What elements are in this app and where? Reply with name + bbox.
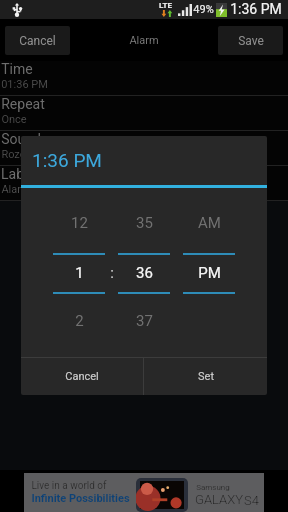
staticText: Live in a world of: [31, 480, 107, 492]
button[interactable]: Time: [0, 61, 288, 96]
staticText: 1:36 PM: [230, 1, 282, 17]
staticText: 35: [136, 214, 153, 232]
staticText: 1: [75, 264, 84, 282]
button[interactable]: Cancel: [21, 358, 143, 395]
staticText: 12: [71, 214, 88, 232]
staticText: AM: [198, 214, 221, 232]
button[interactable]: Set: [144, 358, 267, 395]
staticText: 2: [75, 312, 84, 330]
staticText: LTE: [159, 1, 172, 10]
staticText: Alarm: [129, 34, 159, 47]
staticText: Label: [1, 166, 35, 182]
staticText: 37: [136, 312, 153, 330]
button[interactable]: 12: [53, 214, 105, 334]
button[interactable]: Cancel: [5, 26, 70, 55]
staticText: 49%: [193, 3, 214, 16]
button[interactable]: AM: [183, 214, 235, 334]
staticText: Once: [1, 113, 27, 126]
staticText: Rozgar: [1, 148, 36, 161]
staticText: Infinite Possibilities: [31, 492, 130, 505]
other: USB connected: [12, 3, 22, 17]
staticText: Samsung: [196, 483, 230, 492]
button[interactable]: 35: [118, 214, 170, 334]
button[interactable]: Live in a world of: [24, 473, 264, 512]
button[interactable]: Save: [218, 26, 283, 55]
staticText: GALAXY: [195, 492, 243, 507]
button[interactable]: Repeat: [0, 96, 288, 131]
staticText: Sound: [1, 131, 41, 147]
staticText: Save: [238, 34, 264, 48]
staticText: Alarm: [1, 183, 31, 196]
staticText: 36: [136, 264, 153, 282]
staticText: Cancel: [19, 34, 56, 48]
button[interactable]: Label: [0, 166, 288, 201]
staticText: 01:36 PM: [1, 78, 48, 91]
staticText: 1:36 PM: [32, 149, 102, 171]
staticText: PM: [198, 264, 221, 282]
staticText: Repeat: [1, 96, 45, 112]
staticText: Set: [198, 370, 214, 383]
button[interactable]: Sound: [0, 131, 288, 166]
staticText: S4: [244, 493, 259, 508]
staticText: Cancel: [65, 370, 99, 383]
staticText: Time: [1, 61, 33, 77]
staticText: :: [110, 264, 114, 282]
